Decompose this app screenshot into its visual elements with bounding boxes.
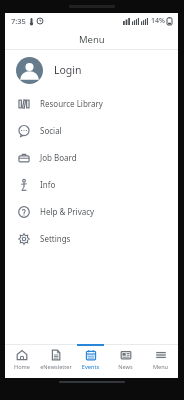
button[interactable]: Job Board bbox=[5, 144, 178, 171]
button[interactable]: Settings bbox=[5, 225, 178, 252]
staticText: Home bbox=[5, 363, 39, 371]
button[interactable]: Home bbox=[5, 344, 39, 378]
button[interactable]: Menu bbox=[143, 344, 178, 378]
staticText: Login bbox=[54, 63, 82, 77]
staticText: Events bbox=[73, 363, 108, 371]
staticText: Settings bbox=[40, 233, 71, 244]
button[interactable]: Login bbox=[5, 50, 178, 90]
button[interactable]: News bbox=[108, 344, 143, 378]
staticText: Social bbox=[40, 125, 62, 136]
button[interactable]: Info bbox=[5, 171, 178, 198]
staticText: Resource Library bbox=[40, 98, 103, 109]
button[interactable]: Social bbox=[5, 117, 178, 144]
staticText: eNewsletter A… bbox=[39, 363, 73, 371]
staticText: News bbox=[108, 363, 143, 371]
staticText: Menu bbox=[79, 33, 105, 46]
button[interactable]: eNewsletter A… bbox=[39, 344, 73, 378]
staticText: Job Board bbox=[40, 152, 77, 163]
button[interactable]: Resource Library bbox=[5, 90, 178, 117]
button[interactable]: Events bbox=[73, 344, 108, 378]
staticText: Help & Privacy bbox=[40, 206, 95, 217]
staticText: 7:35 bbox=[11, 16, 26, 26]
staticText: Info bbox=[40, 179, 56, 190]
staticText: Menu bbox=[143, 363, 178, 371]
staticText: 14% bbox=[151, 16, 165, 26]
button[interactable]: Help & Privacy bbox=[5, 198, 178, 225]
